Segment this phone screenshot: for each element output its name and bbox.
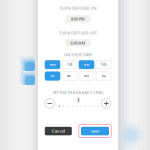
staticText: 1	[77, 97, 80, 104]
staticText: ALL	[101, 74, 105, 78]
button[interactable]: WED	[79, 60, 94, 69]
staticText: Save	[91, 128, 99, 134]
staticText: ON THESE DAYS	[64, 52, 92, 57]
staticText: 6:00 AM	[70, 40, 85, 45]
staticText: Cancel	[52, 128, 65, 134]
button[interactable]: THU	[96, 60, 111, 69]
button[interactable]: SAT	[62, 72, 77, 80]
button[interactable]: SUN	[79, 72, 94, 80]
button[interactable]: 6:00 AM	[65, 39, 90, 47]
staticText: MON	[49, 63, 55, 66]
button[interactable]: Increase fragrance level	[101, 99, 111, 108]
button[interactable]: FRI	[45, 72, 60, 80]
button[interactable]: 8:00 PM	[65, 15, 90, 23]
button[interactable]: ALL	[96, 72, 111, 80]
staticText: TURN DIFFUSER OFF	[59, 30, 97, 36]
staticText: THU	[100, 63, 106, 66]
button[interactable]: Cancel	[45, 127, 72, 135]
button[interactable]: TUE	[62, 60, 77, 69]
button[interactable]: Decrease fragrance level	[45, 99, 54, 108]
staticText: SUN	[84, 74, 89, 78]
staticText: 8:00 PM	[71, 16, 85, 22]
button[interactable]: Save	[79, 125, 111, 137]
staticText: SAT	[67, 74, 72, 78]
button[interactable]: MON	[45, 60, 60, 69]
staticText: TURN DIFFUSER ON	[59, 5, 96, 11]
staticText: TUE	[67, 63, 72, 66]
staticText: WED	[83, 63, 89, 66]
staticText: SET THE FRAGRANCE LEVEL	[52, 90, 103, 95]
staticText: FRI	[50, 74, 54, 78]
